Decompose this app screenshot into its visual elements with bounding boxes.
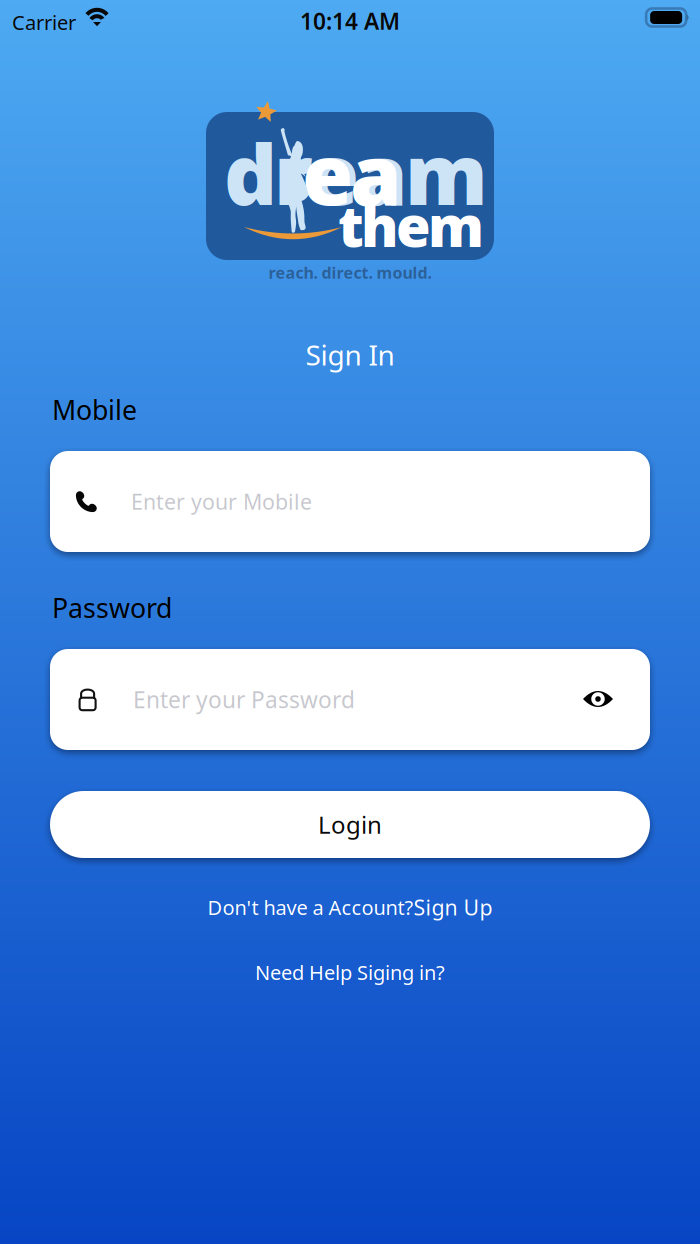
button[interactable]: Login <box>50 791 650 858</box>
staticText: ea <box>302 118 402 228</box>
staticText: Sign In <box>305 336 394 373</box>
button[interactable]: Show password <box>570 671 626 727</box>
staticText: Don't have a Account? <box>207 894 413 920</box>
staticText: Password <box>52 590 172 625</box>
staticText: Sign Up <box>413 893 492 921</box>
staticText: Enter your Mobile <box>131 487 312 516</box>
staticText: dream <box>224 118 488 228</box>
button[interactable]: Don't have a Account? <box>0 893 700 921</box>
staticText: Enter your Password <box>133 684 355 714</box>
staticText: them <box>338 188 484 262</box>
button[interactable]: Need Help Siging in? <box>0 959 700 986</box>
staticText: 10:14 AM <box>300 6 400 36</box>
staticText: reach. direct. mould. <box>268 262 431 283</box>
button[interactable]: Enter your Password <box>50 649 650 750</box>
staticText: Login <box>318 809 382 840</box>
staticText: Carrier <box>12 9 76 36</box>
staticText: Mobile <box>52 392 137 427</box>
staticText: Need Help Siging in? <box>255 959 445 986</box>
button[interactable]: Enter your Mobile <box>50 451 650 552</box>
